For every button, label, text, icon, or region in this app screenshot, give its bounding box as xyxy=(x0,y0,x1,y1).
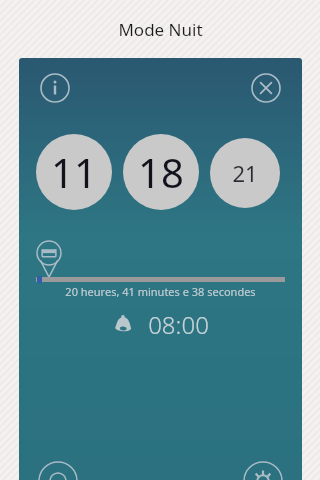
staticText: 18 xyxy=(138,145,184,199)
button[interactable]: Parametres xyxy=(241,459,285,480)
staticText: 20 heures, 41 minutes e 38 secondes xyxy=(65,284,256,299)
staticText: 08:00 xyxy=(148,308,209,341)
button[interactable]: Heure de coucher xyxy=(36,240,62,278)
button[interactable]: 08:00 xyxy=(19,308,302,341)
button[interactable]: Fermer xyxy=(248,70,284,106)
button[interactable]: Informations xyxy=(37,70,73,106)
button[interactable]: 18 xyxy=(123,134,199,210)
button[interactable]: Rafraichir xyxy=(36,459,80,480)
button[interactable]: 21 xyxy=(210,138,280,208)
button[interactable] xyxy=(36,273,285,285)
button[interactable]: 11 xyxy=(36,134,112,210)
staticText: Mode Nuit xyxy=(118,18,203,41)
staticText: 21 xyxy=(232,158,258,188)
staticText: 11 xyxy=(51,145,97,199)
